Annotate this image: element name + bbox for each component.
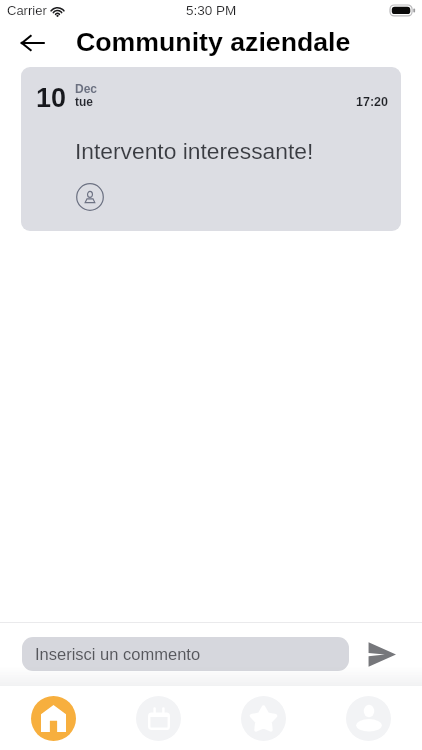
button[interactable]: Calendar [136,696,181,741]
button[interactable]: Home [31,696,76,741]
button[interactable]: Inserisci un commento [22,637,349,671]
staticText: Community aziendale [76,27,351,57]
staticText: Carrier [7,3,47,18]
staticText: 10 [36,83,67,113]
staticText: 5:30 PM [186,3,237,18]
button[interactable]: 10 [21,67,401,231]
staticText: Intervento interessante! [75,138,314,163]
staticText: 17:20 [356,95,388,109]
button[interactable]: Back [15,26,49,60]
staticText: tue [75,95,93,108]
staticText: Inserisci un commento [35,645,201,663]
button[interactable]: Favourites [241,696,286,741]
button[interactable]: Profile [346,696,391,741]
staticText: Dec [75,82,98,95]
button[interactable]: Send [363,635,401,673]
